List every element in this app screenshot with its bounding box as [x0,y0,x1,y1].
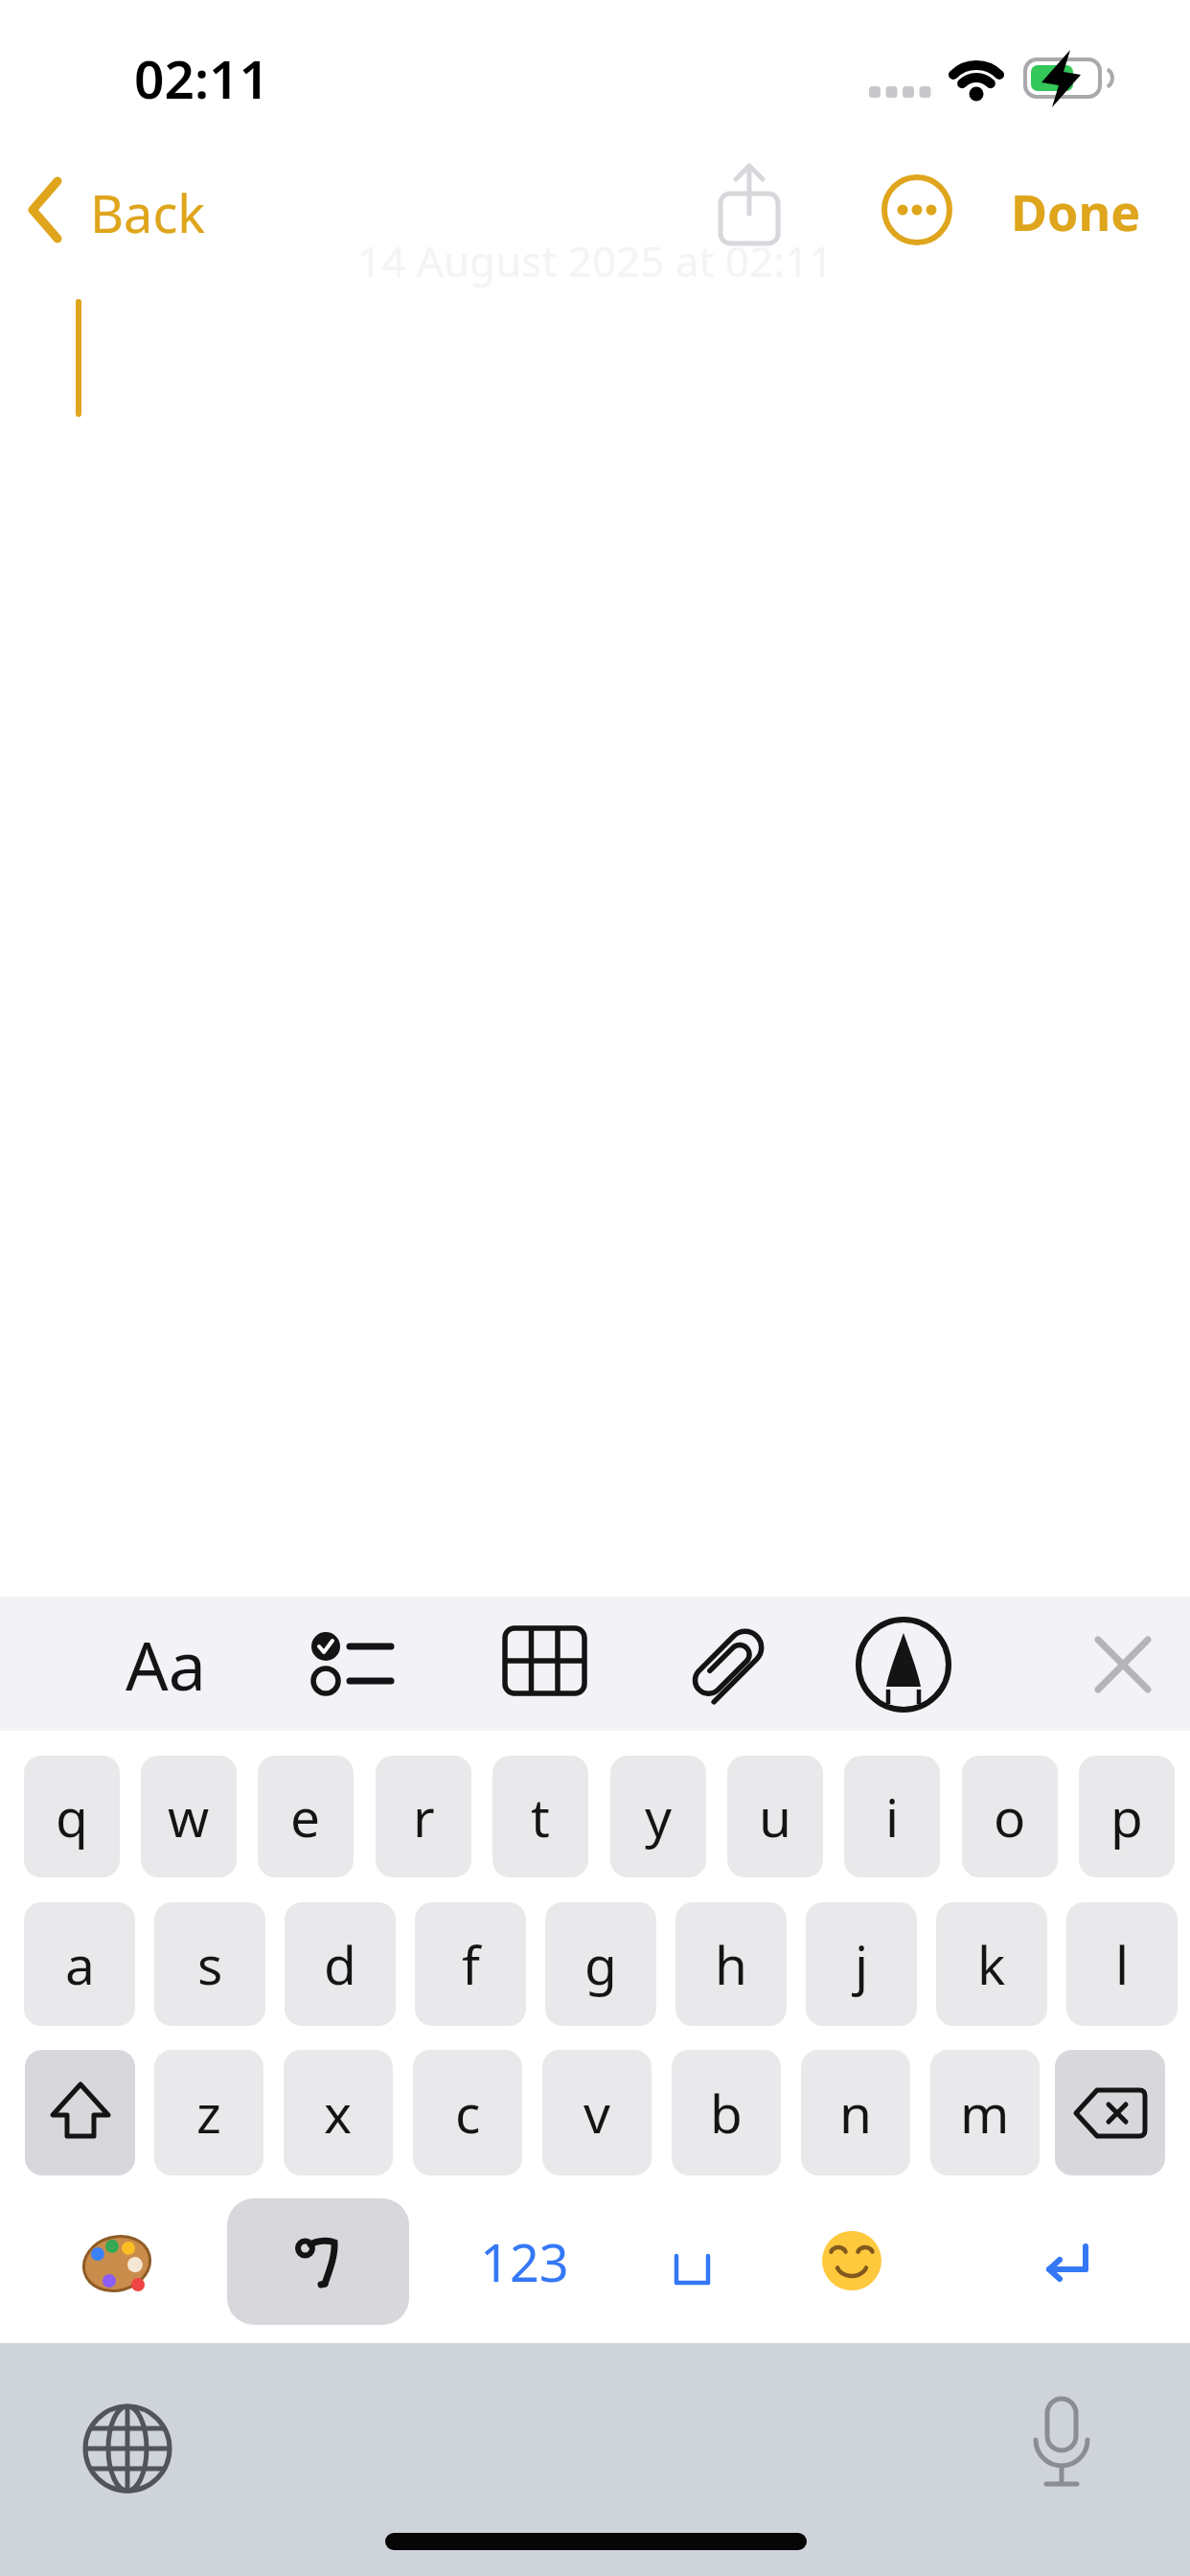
button[interactable] [881,174,952,245]
button[interactable]: k [936,1902,1047,2026]
staticText: t [531,1781,550,1852]
button[interactable]: m [930,2050,1040,2175]
staticText: u [759,1781,791,1852]
button[interactable] [632,2198,747,2325]
button[interactable] [297,1597,412,1731]
staticText: q [56,1781,88,1852]
button[interactable]: i [844,1756,940,1877]
button[interactable]: Aa [105,1597,225,1731]
button[interactable]: w [141,1756,237,1877]
staticText: c [455,2077,481,2149]
button[interactable]: q [24,1756,120,1877]
staticText: Aa [126,1619,206,1710]
button[interactable] [227,2198,409,2325]
button[interactable]: y [610,1756,706,1877]
button[interactable] [1016,2391,1108,2496]
staticText: 02:11 [134,42,270,114]
button[interactable]: t [492,1756,588,1877]
staticText: r [413,1781,435,1852]
staticText: v [584,2077,610,2149]
button[interactable] [25,2050,135,2175]
button[interactable] [819,2228,884,2293]
button[interactable]: l [1066,1902,1178,2026]
staticText: 123 [480,2226,569,2297]
staticText: o [994,1781,1026,1852]
button[interactable]: Done [1011,177,1155,244]
staticText: l [1115,1928,1130,2000]
staticText: g [584,1928,617,2000]
button[interactable] [1055,2050,1165,2175]
staticText: p [1110,1781,1143,1852]
button[interactable]: n [801,2050,910,2175]
staticText: a [65,1928,95,2000]
button[interactable]: h [675,1902,787,2026]
staticText: w [168,1781,210,1852]
staticText: j [855,1928,869,2000]
button[interactable]: u [727,1756,823,1877]
button[interactable]: r [376,1756,471,1877]
staticText: i [885,1781,900,1852]
button[interactable]: v [542,2050,652,2175]
staticText: x [324,2077,353,2149]
button[interactable] [704,158,795,254]
staticText: k [977,1928,1006,2000]
staticText: Done [1011,177,1141,244]
button[interactable]: o [962,1756,1058,1877]
staticText: n [839,2077,872,2149]
button[interactable] [80,2227,153,2300]
button[interactable] [81,2403,173,2495]
button[interactable]: x [284,2050,393,2175]
button[interactable]: b [672,2050,781,2175]
button[interactable]: 123 [441,2198,608,2325]
button[interactable] [671,1597,786,1731]
button[interactable]: Back [19,168,220,254]
button[interactable]: z [154,2050,263,2175]
staticText: z [196,2077,221,2149]
staticText: m [960,2077,1010,2149]
button[interactable]: a [24,1902,135,2026]
staticText: s [197,1928,223,2000]
button[interactable] [493,1597,594,1731]
staticText: Back [90,177,206,248]
button[interactable]: f [415,1902,526,2026]
button[interactable]: g [545,1902,656,2026]
staticText: h [715,1928,747,2000]
button[interactable]: j [806,1902,917,2026]
button[interactable]: s [154,1902,265,2026]
staticText: b [710,2077,743,2149]
staticText: y [645,1781,673,1852]
staticText: d [324,1928,356,2000]
button[interactable]: p [1079,1756,1175,1877]
staticText: 14 August 2025 at 02:11 [357,232,834,289]
staticText: f [462,1928,480,2000]
button[interactable]: d [285,1902,396,2026]
button[interactable]: c [413,2050,522,2175]
button[interactable] [1083,1597,1169,1731]
button[interactable]: e [258,1756,354,1877]
staticText: e [290,1781,321,1852]
button[interactable] [1025,2214,1111,2310]
button[interactable] [848,1597,959,1731]
